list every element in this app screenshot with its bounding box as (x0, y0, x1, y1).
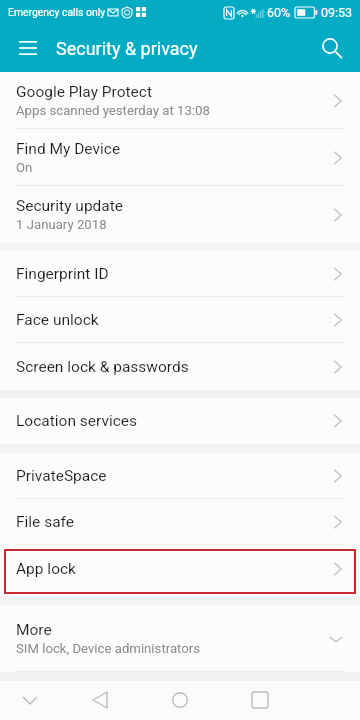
staticText: 1 January 2018 (16, 217, 107, 232)
button[interactable]: Security update (0, 186, 360, 243)
staticText: Find My Device (16, 140, 121, 158)
staticText: 60% (267, 5, 291, 20)
staticText: Security & privacy (56, 38, 198, 59)
button[interactable]: Fingerprint ID (0, 251, 360, 297)
button[interactable]: Search (308, 24, 356, 72)
staticText: PrivateSpace (16, 467, 107, 485)
staticText: Security update (16, 197, 124, 215)
button[interactable]: Find My Device (0, 129, 360, 186)
staticText: Location services (16, 412, 138, 430)
staticText: Face unlock (16, 311, 99, 329)
staticText: File safe (16, 513, 75, 531)
staticText: App lock (16, 560, 76, 578)
staticText: Apps scanned yesterday at 13:08 (16, 103, 210, 118)
button[interactable]: Recents (220, 680, 300, 720)
staticText: More (16, 621, 52, 639)
button[interactable]: PrivateSpace (0, 453, 360, 499)
button[interactable]: Home (140, 680, 220, 720)
button[interactable]: Hide keyboard (0, 680, 60, 720)
staticText: On (16, 160, 33, 175)
staticText: Emergency calls only (8, 6, 106, 18)
button[interactable]: File safe (0, 499, 360, 545)
staticText: 09:53 (321, 5, 353, 20)
button[interactable]: Menu (4, 24, 52, 72)
staticText: Fingerprint ID (16, 265, 109, 283)
staticText: Screen lock & passwords (16, 358, 189, 376)
staticText: Google Play Protect (16, 83, 153, 101)
staticText: SIM lock, Device administrators (16, 641, 201, 656)
button[interactable]: Screen lock & passwords (0, 343, 360, 390)
button[interactable]: Google Play Protect (0, 72, 360, 129)
button[interactable]: Back (60, 680, 140, 720)
button[interactable]: Face unlock (0, 297, 360, 343)
button[interactable]: Location services (0, 398, 360, 444)
button[interactable]: App lock (0, 545, 360, 596)
button[interactable]: More (0, 605, 360, 672)
